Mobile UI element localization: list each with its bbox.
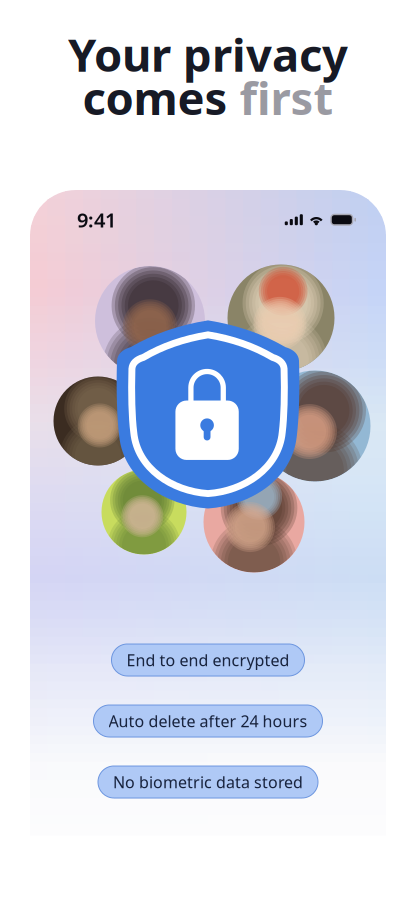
staticText: comes xyxy=(82,67,239,127)
staticText: Your privacy xyxy=(68,24,348,84)
staticText: 9:41 xyxy=(77,206,116,233)
button[interactable]: Auto delete after 24 hours xyxy=(93,705,322,737)
staticText: No biometric data stored xyxy=(113,771,303,793)
button[interactable]: End to end encrypted xyxy=(111,644,304,676)
button[interactable]: No biometric data stored xyxy=(98,766,318,798)
staticText: Auto delete after 24 hours xyxy=(108,710,307,732)
staticText: first xyxy=(239,67,333,127)
staticText: End to end encrypted xyxy=(126,649,289,671)
